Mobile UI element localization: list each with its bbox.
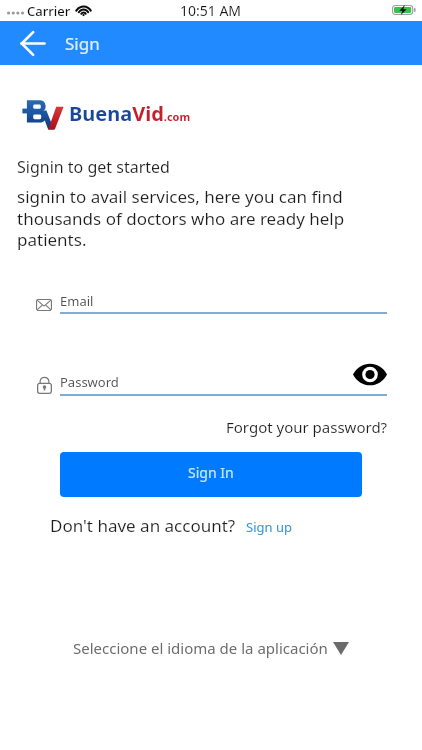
staticText: Don't have an account? xyxy=(50,514,236,537)
button[interactable]: Show password xyxy=(350,354,390,394)
staticText: Sign xyxy=(65,32,100,55)
staticText: Signin to get started xyxy=(17,156,170,178)
staticText: Email xyxy=(60,292,94,310)
button[interactable]: Sign up xyxy=(246,518,292,536)
staticText: BuenaVid.com xyxy=(69,100,191,127)
staticText: Forgot your password? xyxy=(226,417,388,437)
button[interactable]: Sign In xyxy=(60,452,362,497)
staticText: Seleccione el idioma de la aplicación xyxy=(73,638,328,658)
staticText: Password xyxy=(60,373,119,391)
staticText: signin to avail services, here you can f… xyxy=(17,185,347,251)
button[interactable]: Forgot your password? xyxy=(226,417,388,437)
staticText: Sign up xyxy=(246,518,292,536)
staticText: Carrier xyxy=(27,2,71,20)
button[interactable]: Back xyxy=(10,21,54,65)
staticText: Sign In xyxy=(188,463,234,482)
button[interactable]: Seleccione el idioma de la aplicación xyxy=(0,638,422,658)
staticText: 10:51 AM xyxy=(180,1,242,20)
